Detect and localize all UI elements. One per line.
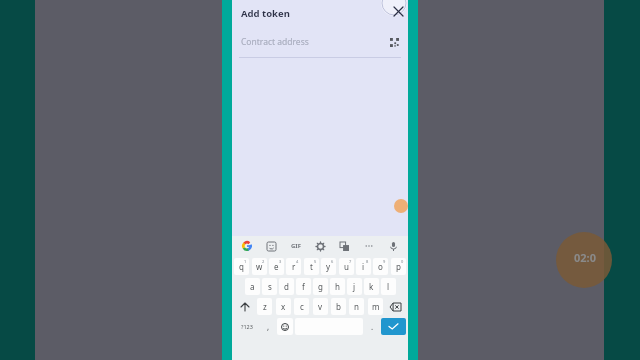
staticText: 8	[366, 259, 369, 264]
staticText: r	[292, 261, 296, 272]
staticText: 2	[262, 259, 265, 264]
button[interactable]: w	[252, 258, 267, 275]
staticText: v	[318, 301, 323, 312]
staticText: m	[372, 301, 380, 312]
staticText: d	[284, 281, 289, 292]
staticText: a	[250, 281, 255, 292]
button[interactable]: k	[364, 278, 379, 295]
button[interactable]: d	[279, 278, 294, 295]
button[interactable]: ,	[261, 318, 275, 335]
button[interactable]: Scan QR code	[387, 35, 401, 49]
staticText: .	[371, 321, 374, 332]
staticText: x	[281, 301, 286, 312]
staticText: e	[274, 261, 279, 272]
button[interactable]: Settings	[311, 237, 329, 255]
staticText: w	[256, 261, 263, 272]
staticText: q	[239, 261, 244, 272]
staticText: t	[310, 261, 313, 272]
staticText: ,	[267, 321, 270, 332]
button[interactable]: Google search	[238, 237, 256, 255]
button[interactable]: m	[368, 298, 383, 315]
button[interactable]: Contract address	[232, 26, 408, 58]
staticText: b	[336, 301, 341, 312]
staticText: k	[369, 281, 374, 292]
staticText: 02:0	[574, 250, 596, 265]
button[interactable]: u	[339, 258, 354, 275]
staticText: 6	[331, 259, 334, 264]
button[interactable]: Voice input	[384, 237, 402, 255]
staticText: 1	[244, 259, 247, 264]
button[interactable]: .	[365, 318, 379, 335]
button[interactable]: y	[321, 258, 336, 275]
button[interactable]: j	[347, 278, 362, 295]
staticText: f	[302, 281, 305, 292]
staticText: Add token	[241, 7, 290, 20]
staticText: s	[268, 281, 272, 292]
button[interactable]: More options	[360, 237, 378, 255]
staticText: l	[387, 281, 390, 292]
button[interactable]: p	[391, 258, 406, 275]
button[interactable]: GIF	[287, 237, 305, 255]
staticText: z	[263, 301, 267, 312]
button[interactable]: i	[356, 258, 371, 275]
button[interactable]: x	[276, 298, 291, 315]
button[interactable]: h	[330, 278, 345, 295]
button[interactable]: t	[304, 258, 319, 275]
button[interactable]: n	[349, 298, 364, 315]
staticText: h	[335, 281, 340, 292]
button[interactable]: Close	[388, 1, 408, 21]
button[interactable]: z	[257, 298, 272, 315]
staticText: 7	[349, 259, 352, 264]
button[interactable]: Backspace	[385, 298, 406, 315]
staticText: i	[362, 261, 365, 272]
button[interactable]: b	[331, 298, 346, 315]
button[interactable]: c	[294, 298, 309, 315]
staticText: j	[353, 281, 356, 292]
button[interactable]: f	[296, 278, 311, 295]
staticText: g	[318, 281, 323, 292]
staticText: 0	[401, 259, 404, 264]
staticText: u	[344, 261, 349, 272]
button[interactable]: Stickers	[262, 237, 280, 255]
staticText: Contract address	[241, 36, 309, 48]
button[interactable]: Emoji	[277, 318, 293, 335]
staticText: p	[396, 261, 401, 272]
staticText: GIF	[291, 242, 301, 250]
button[interactable]: Translate	[335, 237, 353, 255]
button[interactable]: g	[313, 278, 328, 295]
button[interactable]: a	[245, 278, 260, 295]
button[interactable]: q	[234, 258, 249, 275]
button[interactable]: r	[286, 258, 301, 275]
staticText: 5	[314, 259, 317, 264]
staticText: 3	[279, 259, 282, 264]
staticText: 4	[296, 259, 299, 264]
button[interactable]: l	[381, 278, 396, 295]
staticText: n	[354, 301, 359, 312]
staticText: ?123	[241, 323, 253, 330]
button[interactable]: ?123	[234, 318, 259, 335]
button[interactable]: v	[313, 298, 328, 315]
button[interactable]: Enter	[381, 318, 406, 335]
staticText: o	[378, 261, 383, 272]
button[interactable]: s	[262, 278, 277, 295]
button[interactable]: o	[373, 258, 388, 275]
staticText: y	[326, 261, 331, 272]
staticText: c	[300, 301, 304, 312]
staticText: 9	[383, 259, 386, 264]
button[interactable]: Shift	[234, 298, 255, 315]
button[interactable]: e	[269, 258, 284, 275]
